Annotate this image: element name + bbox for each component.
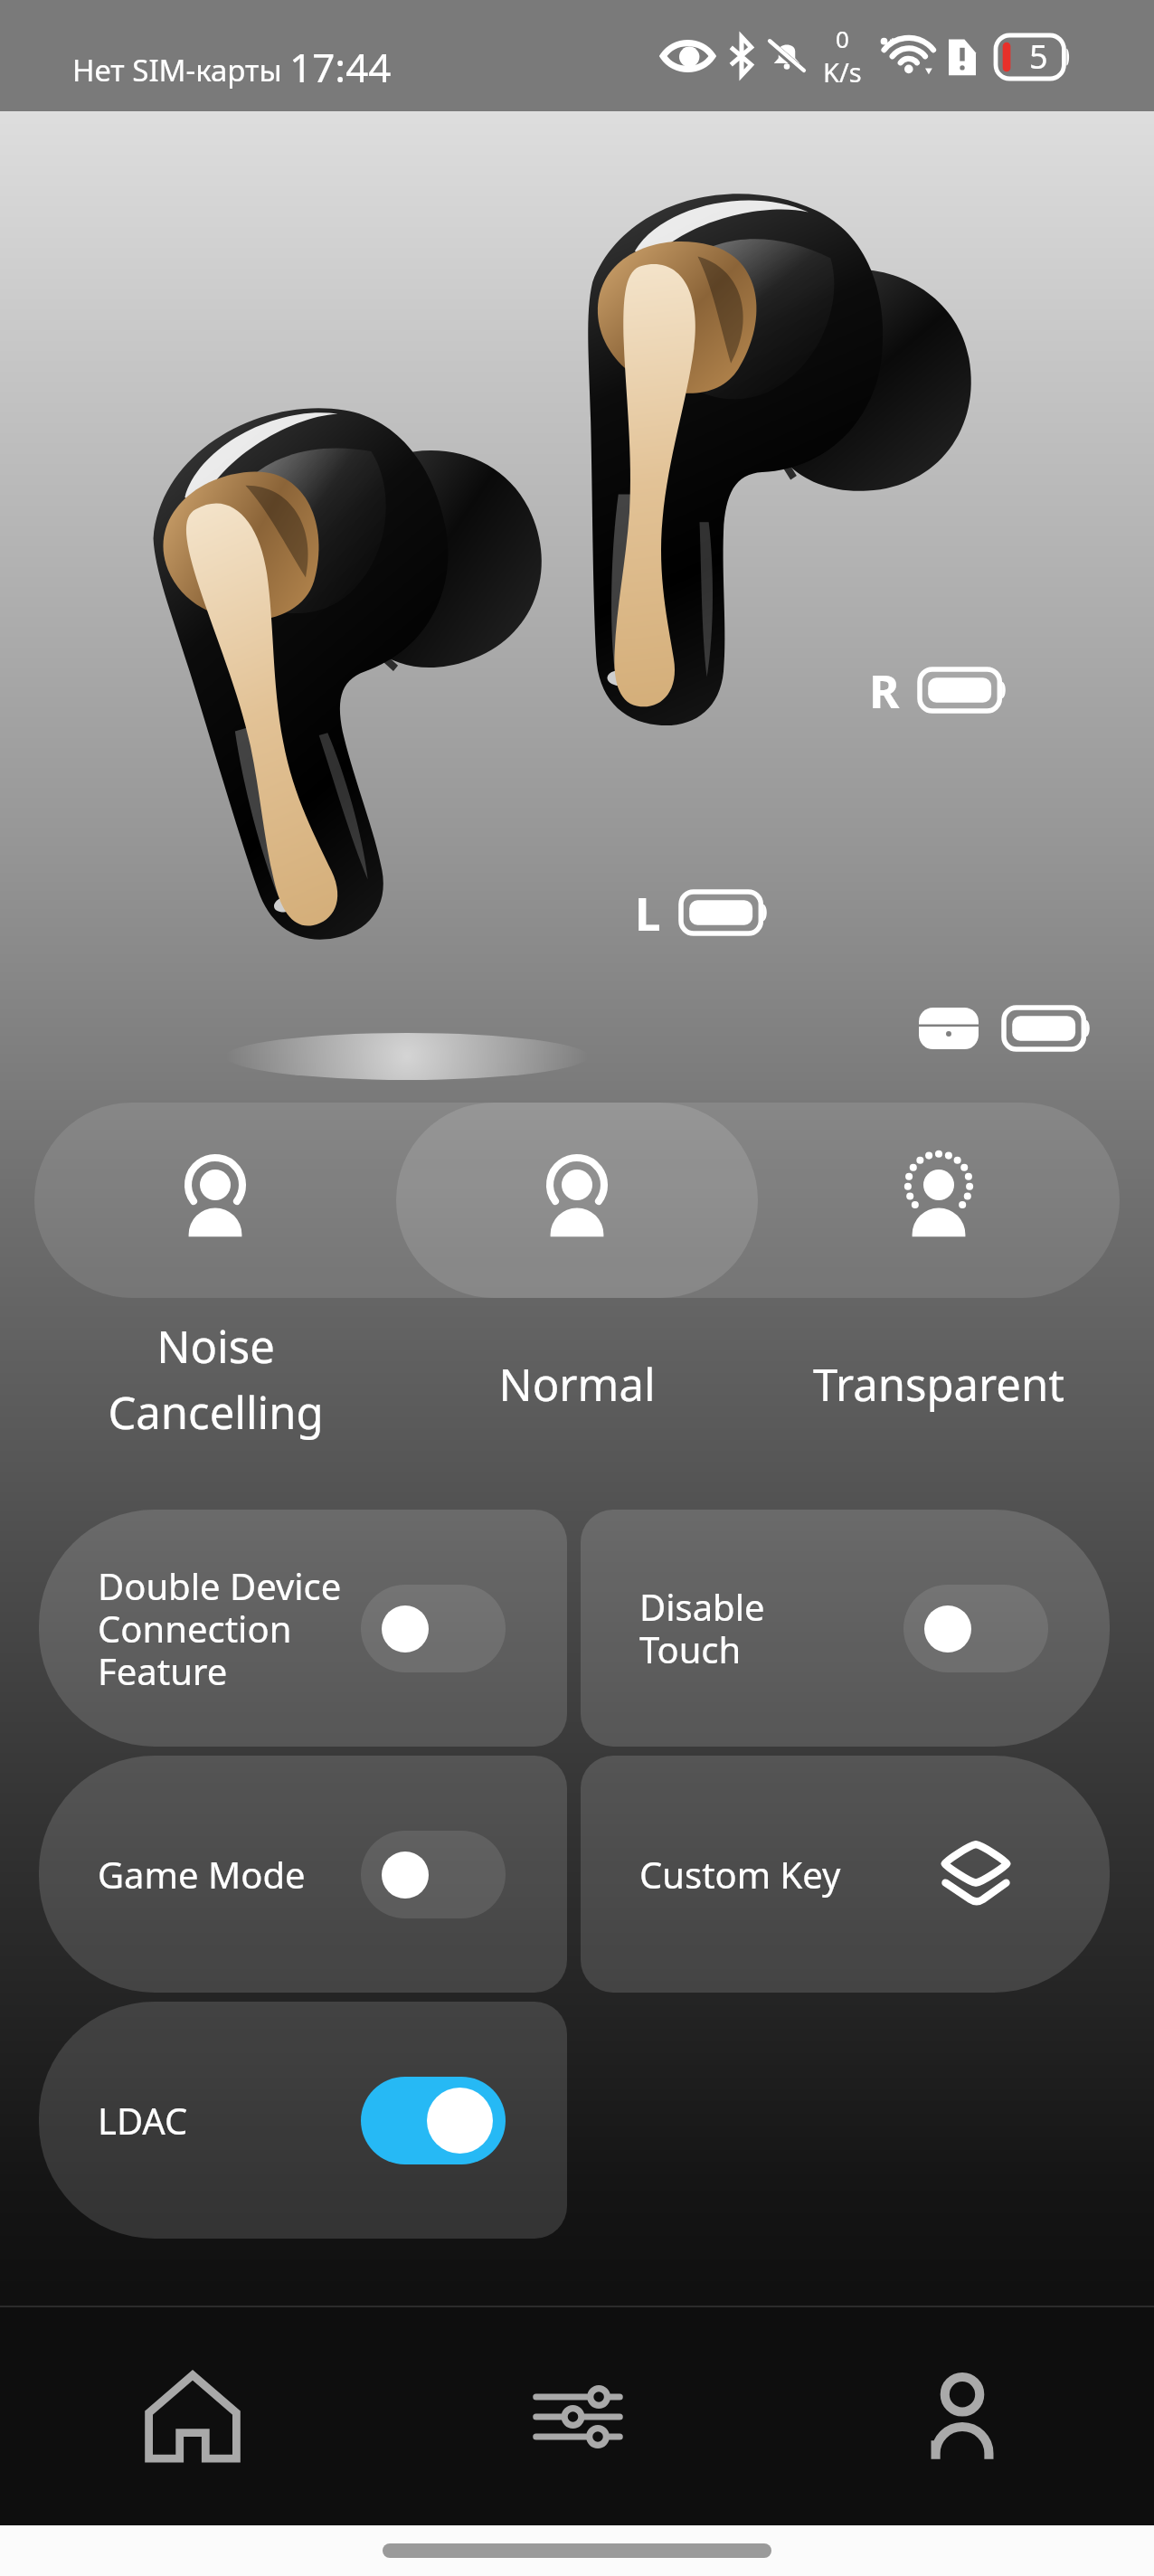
button[interactable]: Equalizer — [385, 2307, 770, 2525]
button[interactable] — [903, 1585, 1048, 1672]
staticText: 5 — [1029, 34, 1048, 79]
staticText: K/s — [823, 54, 862, 90]
staticText: Custom Key — [639, 1850, 937, 1899]
button[interactable]: Normal — [396, 1103, 758, 1298]
staticText: Game Mode — [98, 1850, 361, 1899]
button[interactable]: Transparent — [758, 1103, 1120, 1298]
button[interactable]: Home — [0, 2307, 385, 2525]
staticText: Нет SIM-карты — [72, 50, 282, 90]
staticText: 17:44 — [289, 40, 392, 94]
button[interactable] — [361, 1585, 506, 1672]
staticText: LDAC — [98, 2096, 361, 2145]
staticText: Noise Cancelling — [108, 1316, 324, 1442]
staticText: R — [869, 658, 900, 721]
button[interactable]: Noise Cancelling — [34, 1103, 396, 1298]
staticText: L — [635, 881, 661, 943]
staticText: 0 — [836, 23, 849, 54]
button[interactable]: Double Device Connection Feature — [39, 1510, 567, 1747]
button[interactable] — [361, 1831, 506, 1918]
button[interactable]: Game Mode — [39, 1756, 567, 1993]
staticText: Transparent — [813, 1354, 1064, 1415]
button[interactable]: Disable Touch — [581, 1510, 1110, 1747]
button[interactable]: Profile — [770, 2307, 1154, 2525]
staticText: Normal — [498, 1354, 656, 1415]
staticText: Disable Touch — [639, 1582, 903, 1674]
button[interactable] — [361, 2077, 506, 2164]
button[interactable]: LDAC — [39, 2002, 567, 2239]
staticText: Double Device Connection Feature — [98, 1561, 361, 1696]
button[interactable]: Custom Key — [581, 1756, 1110, 1993]
